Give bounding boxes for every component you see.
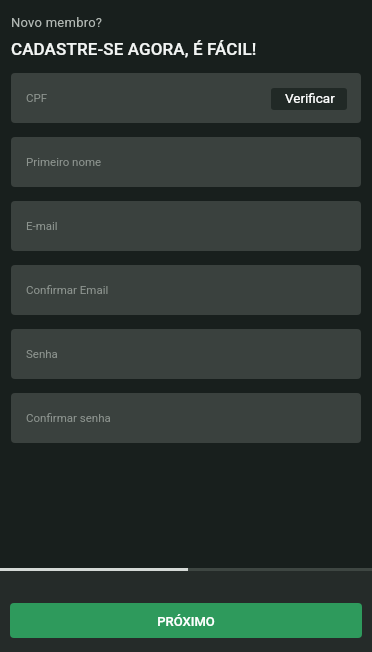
button[interactable]: PRÓXIMO <box>10 603 362 638</box>
staticText: Verificar <box>285 90 335 106</box>
button[interactable]: CPF <box>11 73 361 123</box>
staticText: Senha <box>26 347 58 360</box>
button[interactable]: Senha <box>11 329 361 379</box>
staticText: Confirmar senha <box>26 411 111 424</box>
staticText: Primeiro nome <box>26 155 102 168</box>
staticText: CADASTRE-SE AGORA, É FÁCIL! <box>11 39 257 59</box>
button[interactable]: Confirmar Email <box>11 265 361 315</box>
staticText: CPF <box>26 91 48 104</box>
staticText: PRÓXIMO <box>157 614 215 629</box>
staticText: E-mail <box>26 219 58 232</box>
button[interactable]: Primeiro nome <box>11 137 361 187</box>
staticText: Confirmar Email <box>26 283 109 296</box>
button[interactable]: Confirmar senha <box>11 393 361 443</box>
button[interactable]: Verificar <box>271 88 347 110</box>
button[interactable]: E-mail <box>11 201 361 251</box>
staticText: Novo membro? <box>11 15 103 30</box>
